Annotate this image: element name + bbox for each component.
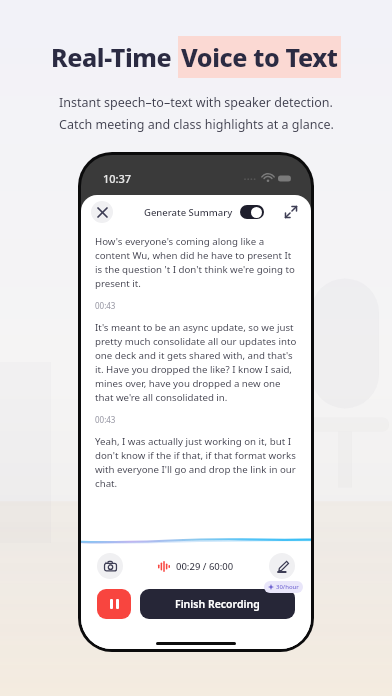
- button[interactable]: Finish Recording: [140, 589, 295, 619]
- staticText: 30/hour: [276, 583, 299, 591]
- button[interactable]: Highlight: [269, 553, 295, 579]
- staticText: Real-Time: [51, 40, 178, 74]
- button[interactable]: Pause recording: [97, 589, 131, 619]
- staticText: 10:37: [103, 171, 132, 186]
- staticText: 00:43: [95, 414, 116, 425]
- staticText: Generate Summary: [144, 206, 233, 219]
- staticText: 00:43: [95, 300, 116, 311]
- staticText: Instant speech–to–text with speaker dete…: [59, 94, 333, 111]
- staticText: How's everyone's coming along like a con…: [95, 235, 297, 290]
- staticText: Catch meeting and class highlights at a …: [59, 116, 334, 133]
- button[interactable]: Camera: [97, 553, 123, 579]
- staticText: It's meant to be an async update, so we …: [95, 321, 297, 404]
- button[interactable]: Collapse: [281, 202, 301, 222]
- staticText: Yeah, I was actually just working on it,…: [95, 435, 297, 490]
- staticText: Finish Recording: [175, 597, 260, 611]
- button[interactable]: Close: [91, 201, 113, 223]
- staticText: Voice to Text: [181, 40, 338, 74]
- button[interactable]: Generate Summary: [144, 205, 264, 219]
- staticText: 00:29 / 60:00: [176, 560, 234, 573]
